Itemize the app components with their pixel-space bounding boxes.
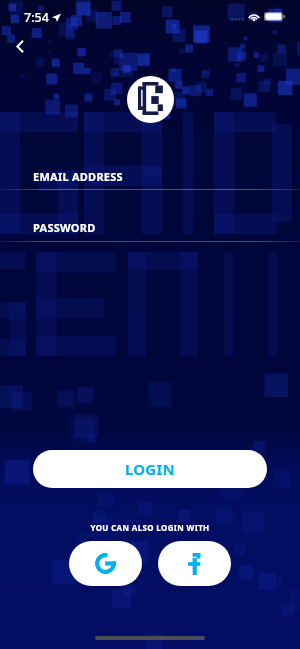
staticText: 7:54 [24,9,49,26]
staticText: PASSWORD [33,220,96,235]
button[interactable]: Login with Facebook [158,541,231,586]
staticText: YOU CAN ALSO LOGIN WITH [0,522,300,533]
button[interactable]: Back [6,32,34,60]
staticText: LOGIN [125,459,175,479]
button[interactable]: LOGIN [33,450,267,488]
button[interactable]: Login with Google [69,541,142,586]
staticText: EMAIL ADDRESS [33,169,123,184]
